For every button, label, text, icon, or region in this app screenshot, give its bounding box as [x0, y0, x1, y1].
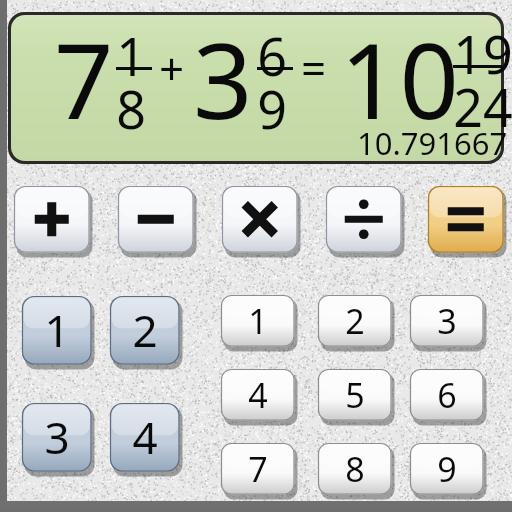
staticText: 5 [345, 372, 365, 418]
staticText: 8 [345, 446, 365, 492]
button[interactable]: 1 [22, 296, 94, 368]
button[interactable]: Equals [428, 186, 506, 256]
staticText: 7 [248, 446, 268, 492]
button[interactable]: Minus [118, 186, 196, 256]
staticText: 8 [116, 73, 146, 144]
staticText: 9 [437, 446, 457, 492]
staticText: + [159, 38, 185, 98]
staticText: 7 [54, 8, 114, 150]
button[interactable]: 8 [318, 443, 394, 498]
button[interactable]: 2 [318, 295, 394, 350]
staticText: 1 [44, 300, 70, 360]
staticText: 6 [437, 372, 457, 418]
button[interactable]: 1 [221, 295, 297, 350]
staticText: 1 [248, 298, 268, 344]
button[interactable]: 5 [318, 369, 394, 424]
button[interactable]: 4 [221, 369, 297, 424]
button[interactable]: 4 [110, 403, 182, 475]
button[interactable]: 7 [8, 12, 504, 164]
staticText: 10.791667 [357, 122, 508, 164]
button[interactable]: 6 [410, 369, 486, 424]
staticText: 19 [453, 18, 512, 89]
button[interactable]: 3 [22, 403, 94, 475]
staticText: 2 [132, 300, 158, 360]
button[interactable]: 7 [221, 443, 297, 498]
button[interactable]: Multiply [222, 186, 300, 256]
button[interactable]: Plus [14, 186, 92, 256]
button[interactable]: Divide [326, 186, 404, 256]
staticText: 4 [248, 372, 268, 418]
button[interactable]: 2 [110, 296, 182, 368]
staticText: 9 [257, 73, 287, 144]
staticText: 1 [116, 20, 146, 91]
staticText: 4 [132, 407, 158, 467]
staticText: 3 [193, 8, 253, 150]
staticText: 6 [257, 20, 287, 91]
button[interactable]: 3 [410, 295, 486, 350]
staticText: 3 [44, 407, 70, 467]
button[interactable]: 9 [410, 443, 486, 498]
staticText: 24 [453, 71, 512, 142]
staticText: = [301, 38, 327, 98]
staticText: 3 [437, 298, 457, 344]
staticText: 10 [340, 8, 459, 150]
staticText: 2 [345, 298, 365, 344]
